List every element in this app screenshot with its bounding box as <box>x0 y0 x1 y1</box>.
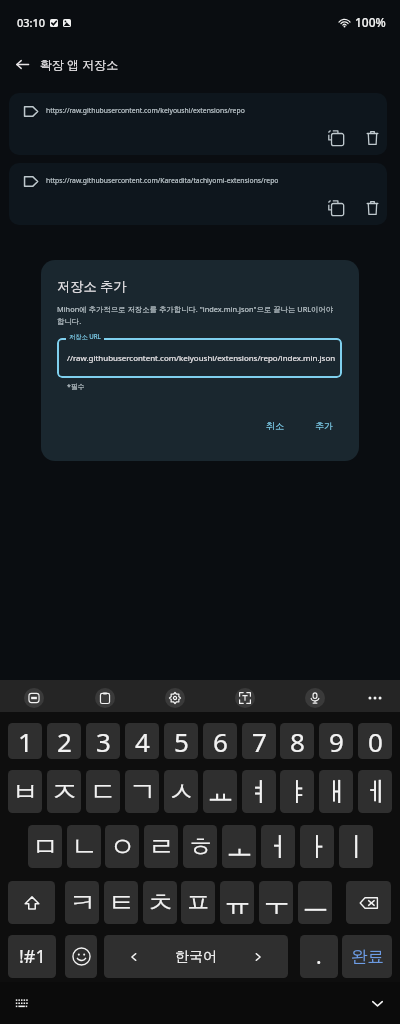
button[interactable]: !#1 <box>8 935 56 978</box>
button[interactable]: ㅌ <box>104 881 138 924</box>
staticText: ㅋ <box>69 886 96 920</box>
button[interactable]: Copy <box>320 192 352 224</box>
button[interactable]: Backspace <box>346 881 391 924</box>
staticText: ㅇ <box>109 830 136 864</box>
staticText: 저장소 추가 <box>57 277 127 295</box>
button[interactable]: 7 <box>242 723 276 759</box>
button[interactable]: Back <box>6 48 38 80</box>
button[interactable]: Settings <box>165 688 185 708</box>
button[interactable]: https://raw.githubusercontent.com/Karead… <box>9 163 387 225</box>
button[interactable]: 추가 <box>305 414 343 437</box>
button[interactable]: ㅛ <box>203 770 237 813</box>
button[interactable]: ㅊ <box>143 881 177 924</box>
button[interactable]: Keyboard <box>8 990 34 1016</box>
button[interactable]: ㅈ <box>47 770 81 813</box>
button[interactable]: ㅍ <box>181 881 215 924</box>
button[interactable]: ㅎ <box>183 825 217 868</box>
button[interactable]: 3 <box>86 723 120 759</box>
button[interactable]: Copy <box>320 122 352 154</box>
staticText: ㄷ <box>90 775 117 809</box>
button[interactable]: More options <box>361 684 389 712</box>
button[interactable]: ㅔ <box>358 770 392 813</box>
button[interactable]: ㅓ <box>261 825 295 868</box>
staticText: 8 <box>290 724 305 759</box>
staticText: ㅓ <box>265 830 292 864</box>
staticText: 4 <box>135 724 150 759</box>
staticText: 100% <box>355 14 386 30</box>
staticText: ㅂ <box>12 775 39 809</box>
button[interactable]: 6 <box>203 723 237 759</box>
staticText: 완료 <box>351 946 384 967</box>
button[interactable]: ㄱ <box>125 770 159 813</box>
button[interactable]: ㄷ <box>86 770 120 813</box>
staticText: ㄱ <box>129 775 156 809</box>
staticText: ㅈ <box>51 775 78 809</box>
button[interactable]: ㅕ <box>242 770 276 813</box>
staticText: 저장소 URL <box>69 332 101 340</box>
staticText: //raw.githubusercontent.com/keiyoushi/ex… <box>67 353 336 364</box>
button[interactable]: ㅏ <box>300 825 334 868</box>
staticText: 3 <box>96 724 111 759</box>
button[interactable]: 취소 <box>256 414 294 437</box>
button[interactable]: 1 <box>8 723 42 759</box>
button[interactable]: Clipboard <box>95 688 115 708</box>
staticText: ㅜ <box>263 886 290 920</box>
button[interactable]: 8 <box>280 723 314 759</box>
staticText: ㅗ <box>226 830 253 864</box>
staticText: ㅔ <box>362 775 389 809</box>
staticText: 2 <box>57 724 72 759</box>
button[interactable]: 0 <box>358 723 392 759</box>
button[interactable]: 한국어 <box>104 935 288 978</box>
staticText: ㅏ <box>304 830 331 864</box>
button[interactable]: 완료 <box>342 935 392 978</box>
button[interactable]: https://raw.githubusercontent.com/keiyou… <box>9 93 387 155</box>
button[interactable]: 4 <box>125 723 159 759</box>
staticText: 확장 앱 저장소 <box>40 56 119 72</box>
button[interactable]: Mihon <box>24 688 44 708</box>
button[interactable]: Delete <box>356 192 387 224</box>
button[interactable]: ㄴ <box>67 825 101 868</box>
staticText: ㅁ <box>32 830 59 864</box>
button[interactable]: Hide keyboard <box>364 990 390 1016</box>
button[interactable]: ㅑ <box>280 770 314 813</box>
staticText: ㅊ <box>147 886 174 920</box>
button[interactable]: . <box>300 935 338 978</box>
button[interactable]: ㅡ <box>298 881 332 924</box>
button[interactable]: ㅁ <box>28 825 62 868</box>
staticText: 6 <box>213 724 228 759</box>
button[interactable]: Voice input <box>305 688 325 708</box>
staticText: ㅌ <box>108 886 135 920</box>
button[interactable]: Text scan <box>235 688 255 708</box>
button[interactable]: 5 <box>164 723 198 759</box>
button[interactable]: 9 <box>319 723 353 759</box>
button[interactable]: ㅂ <box>8 770 42 813</box>
button[interactable]: ㅇ <box>105 825 139 868</box>
staticText: https://raw.githubusercontent.com/keiyou… <box>46 106 245 115</box>
staticText: ㄹ <box>148 830 175 864</box>
button[interactable]: ㅅ <box>164 770 198 813</box>
staticText: . <box>316 942 322 971</box>
button[interactable]: Emoji <box>65 935 97 978</box>
staticText: *필수 <box>67 382 85 392</box>
staticText: ㅎ <box>187 830 214 864</box>
staticText: ㅅ <box>168 775 195 809</box>
button[interactable]: ㅋ <box>65 881 99 924</box>
staticText: ㅍ <box>185 886 212 920</box>
staticText: Mihon에 추가적으로 저장소를 추가합니다. "index.min.json… <box>57 304 357 326</box>
button[interactable]: ㅠ <box>220 881 254 924</box>
staticText: 03:10 <box>17 15 46 30</box>
button[interactable]: ㅜ <box>259 881 293 924</box>
button[interactable] <box>57 338 342 378</box>
button[interactable]: Delete <box>356 122 387 154</box>
staticText: ㅛ <box>207 775 234 809</box>
staticText: 한국어 <box>175 948 217 966</box>
button[interactable]: ㅗ <box>222 825 256 868</box>
staticText: ㅣ <box>343 830 370 864</box>
button[interactable]: ㅐ <box>319 770 353 813</box>
button[interactable]: Shift <box>8 881 55 924</box>
button[interactable]: ㅣ <box>339 825 373 868</box>
staticText: 추가 <box>315 420 333 431</box>
button[interactable]: ㄹ <box>144 825 178 868</box>
button[interactable]: 2 <box>47 723 81 759</box>
staticText: !#1 <box>19 944 46 969</box>
